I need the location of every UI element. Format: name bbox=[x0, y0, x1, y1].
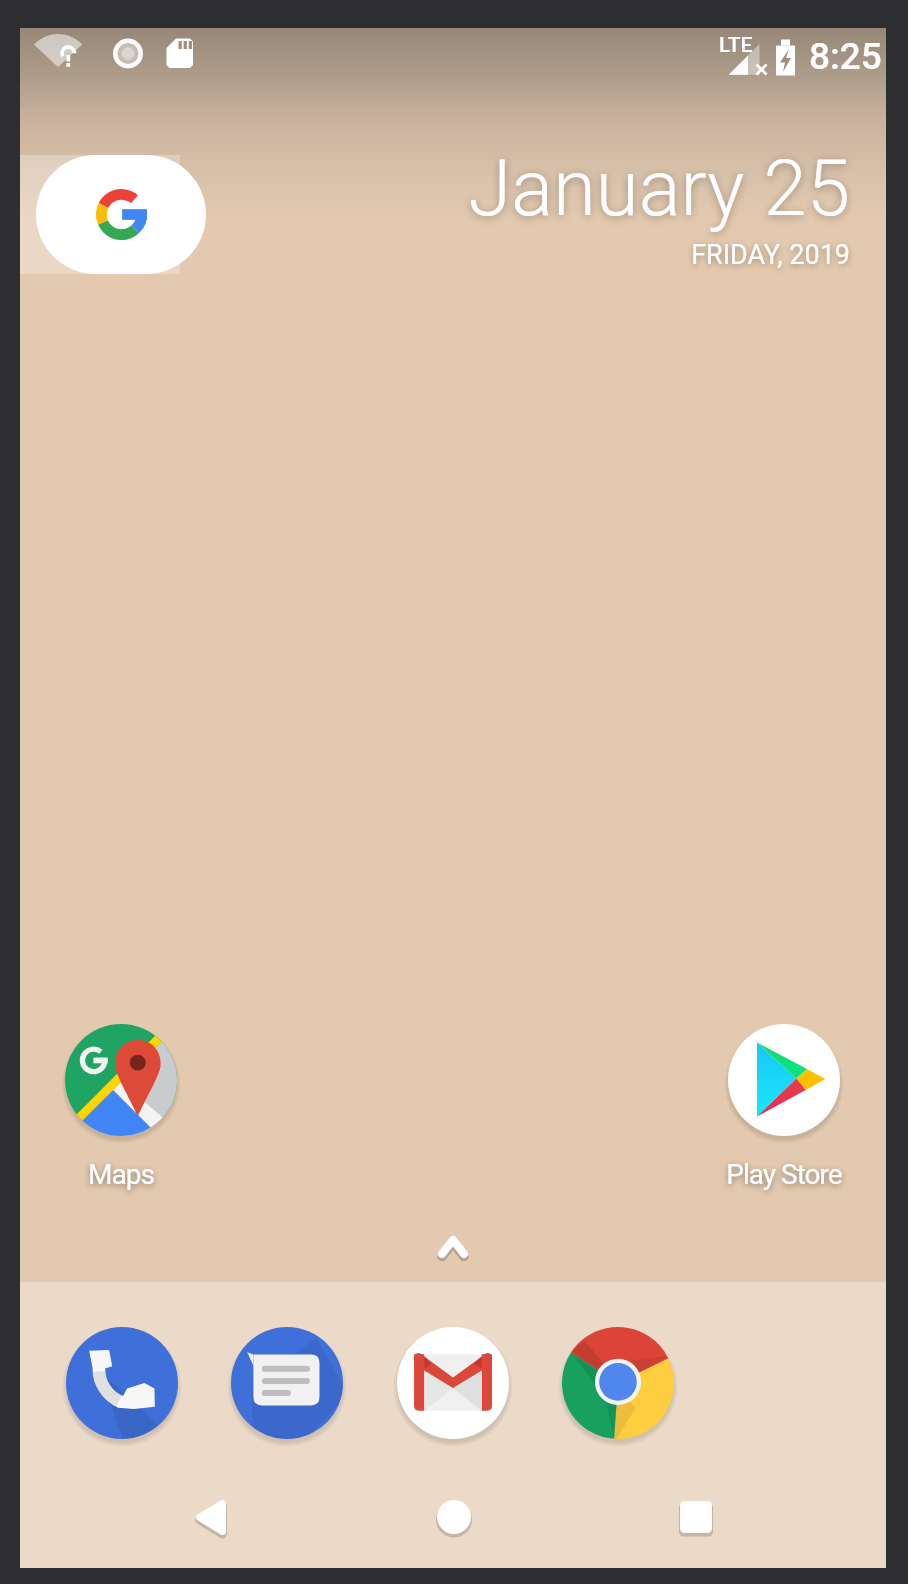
button[interactable]: Google Search bbox=[36, 155, 206, 274]
button[interactable]: Maps bbox=[35, 1014, 207, 1204]
staticText: January 25 bbox=[468, 143, 850, 234]
button[interactable]: Recent apps bbox=[636, 1483, 756, 1551]
staticText: FRIDAY, 2019 bbox=[691, 239, 850, 271]
button[interactable]: Back bbox=[150, 1483, 270, 1551]
button[interactable]: Open app drawer bbox=[423, 1217, 483, 1277]
staticText: Play Store bbox=[726, 1158, 842, 1191]
button[interactable]: Home bbox=[394, 1483, 514, 1551]
button[interactable]: Gmail bbox=[387, 1317, 519, 1449]
button[interactable]: Phone bbox=[56, 1317, 188, 1449]
button[interactable]: January 25 bbox=[444, 143, 850, 266]
button[interactable]: Chrome bbox=[552, 1317, 684, 1449]
staticText: LTE bbox=[719, 33, 753, 58]
staticText: Maps bbox=[88, 1158, 154, 1191]
button[interactable]: Messages bbox=[221, 1317, 353, 1449]
staticText: 8:25 bbox=[809, 35, 882, 78]
button[interactable]: Play Store bbox=[698, 1014, 870, 1204]
